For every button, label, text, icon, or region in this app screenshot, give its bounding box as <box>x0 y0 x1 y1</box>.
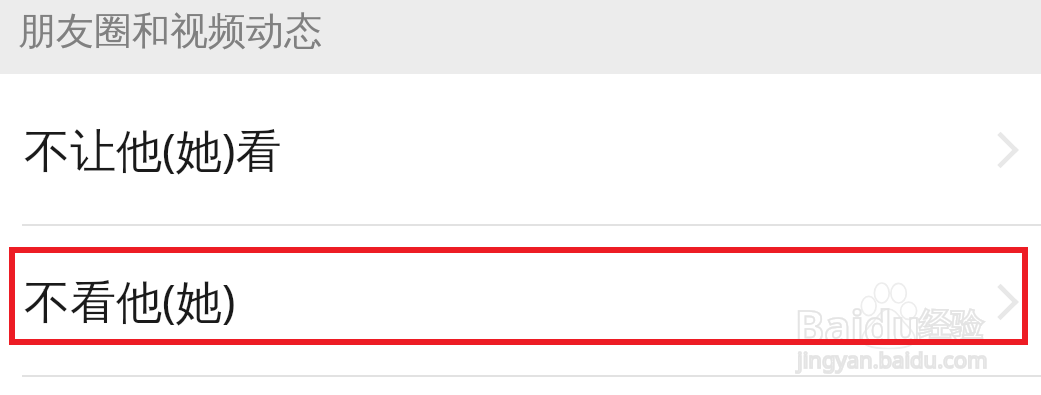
staticText: 不让他(她)看 <box>24 118 282 181</box>
other: Open 不让他(她)看 <box>995 130 1017 170</box>
staticText: 不看他(她) <box>24 269 236 332</box>
other: Open 不看他(她) <box>995 282 1017 322</box>
button[interactable]: 不让他(她)看 <box>0 74 1041 226</box>
button[interactable]: 不看他(她) <box>0 226 1041 377</box>
staticText: 经验 <box>919 305 983 345</box>
staticText: jingyan.baidu.com <box>797 344 988 374</box>
staticText: Baidu <box>795 296 921 356</box>
staticText: 朋友圈和视频动态 <box>18 7 322 55</box>
